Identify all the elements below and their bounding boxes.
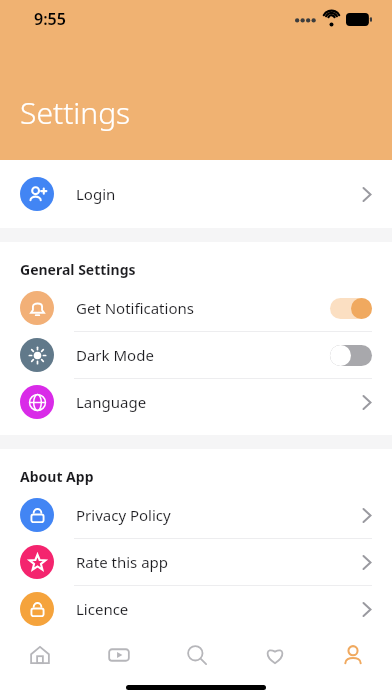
staticText: General Settings: [20, 260, 136, 279]
button[interactable]: Rate this app: [0, 539, 392, 586]
button[interactable]: Search: [158, 632, 236, 678]
button[interactable]: Login: [0, 160, 392, 228]
button[interactable]: Favourites: [236, 632, 314, 678]
button[interactable]: Home: [0, 632, 79, 678]
button[interactable]: Get Notifications: [0, 285, 392, 332]
staticText: Get Notifications: [76, 298, 194, 318]
button[interactable]: Language: [0, 379, 392, 425]
staticText: About App: [20, 467, 94, 486]
button[interactable]: Profile: [314, 632, 392, 678]
staticText: Rate this app: [76, 552, 169, 572]
staticText: Dark Mode: [76, 345, 154, 365]
staticText: Licence: [76, 599, 129, 619]
staticText: Language: [76, 392, 147, 412]
staticText: 9:55: [34, 8, 66, 30]
button[interactable]: Dark Mode: [0, 332, 392, 379]
staticText: Login: [76, 184, 116, 204]
staticText: Settings: [20, 92, 131, 133]
button[interactable]: Videos: [79, 632, 158, 678]
staticText: Privacy Policy: [76, 505, 171, 525]
button[interactable]: Licence: [0, 586, 392, 632]
button[interactable]: Privacy Policy: [0, 492, 392, 539]
